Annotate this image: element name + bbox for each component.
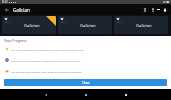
button[interactable]: Duolingo (114, 16, 168, 34)
staticText: Duolingo (65, 18, 76, 21)
button[interactable]: Duolingo (58, 16, 112, 34)
staticText: 8:30 (2, 0, 8, 4)
button[interactable]: Leaderboard (149, 4, 156, 15)
button[interactable]: Recent apps (120, 89, 131, 100)
button[interactable]: Close (4, 79, 167, 86)
staticText: Level 1 (4, 21, 12, 24)
staticText: Duolingo (121, 18, 132, 21)
button[interactable]: Duolingo (2, 16, 56, 34)
staticText: Galician (80, 23, 96, 29)
button[interactable]: Navigate up (0, 4, 13, 15)
staticText: Your Progress (4, 38, 27, 43)
staticText: Galician (136, 23, 152, 29)
staticText: Galician (13, 7, 30, 13)
button[interactable]: Back (40, 89, 51, 100)
button[interactable]: Time spent (140, 4, 149, 15)
staticText: Close (82, 81, 90, 85)
button[interactable]: Home (80, 89, 91, 100)
staticText: Galician (24, 23, 40, 29)
staticText: Duolingo (9, 18, 20, 21)
staticText: Level 1 (60, 21, 68, 24)
button[interactable]: Awards (161, 4, 169, 15)
staticText: You are just phenomenally here, keep the… (11, 70, 83, 73)
staticText: You have completed the standard tests an… (11, 48, 84, 51)
staticText: Stay tune to the language is enabled, an… (11, 59, 81, 62)
staticText: Level 1 (116, 21, 124, 24)
